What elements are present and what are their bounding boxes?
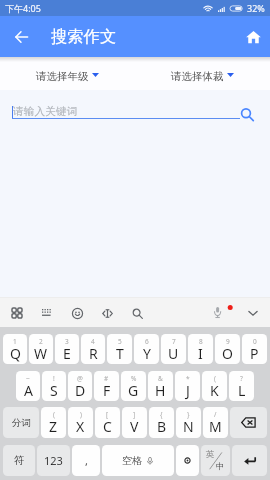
staticText: Y [143,344,151,363]
staticText: L [238,381,246,400]
button[interactable]: ( [41,407,66,438]
button[interactable]: # [94,371,119,401]
button[interactable]: Search [236,104,258,126]
staticText: I [198,344,203,363]
button[interactable]: 1 [3,334,27,364]
staticText: G [128,381,139,400]
button[interactable]: Move cursor [92,299,122,327]
staticText: 中 [216,461,225,472]
button[interactable]: 分词 [3,407,39,438]
button[interactable]: Search [122,299,152,327]
staticText: [ [106,410,109,419]
staticText: 英 [206,449,215,460]
staticText: # [104,374,109,383]
button[interactable]: 5 [107,334,132,364]
staticText: H [155,381,166,400]
button[interactable]: Enter [232,445,267,476]
button[interactable]: Period [176,445,199,476]
staticText: & [158,374,163,383]
button[interactable]: & [148,371,173,401]
staticText: C [103,417,112,436]
staticText: K [210,381,219,400]
staticText: ! [53,374,55,383]
staticText: ( [53,410,55,419]
button[interactable]: 7 [161,334,186,364]
button[interactable]: ] [122,407,147,438]
staticText: / [214,410,217,419]
button[interactable]: @ [68,371,92,401]
button[interactable]: Backspace [230,407,267,438]
button[interactable]: Keyboard layout [32,299,62,327]
button[interactable]: Switch language [201,445,230,476]
staticText: % [131,374,137,383]
button[interactable]: Apps [2,299,32,327]
staticText: 0 [253,337,257,346]
staticText: Q [10,344,21,363]
staticText: 符 [14,454,25,467]
staticText: D [75,381,86,400]
staticText: 9 [226,337,230,346]
button[interactable]: 3 [55,334,79,364]
staticText: U [168,344,179,363]
button[interactable]: ~ [16,371,40,401]
staticText: 请输入关键词 [13,105,78,118]
staticText: 分词 [12,417,31,429]
button[interactable]: , [72,445,100,476]
staticText: 空格 [122,454,142,467]
button[interactable]: Space [102,445,174,476]
button[interactable]: Emoji [62,299,92,327]
staticText: 5 [118,337,122,346]
button[interactable]: { [149,407,174,438]
staticText: 2 [39,337,43,346]
button[interactable]: ( [202,371,227,401]
staticText: ? [240,374,243,383]
staticText: O [222,344,233,363]
button[interactable]: 符 [3,445,35,476]
staticText: W [34,344,48,363]
button[interactable]: % [121,371,146,401]
button[interactable]: 6 [134,334,159,364]
staticText: { [160,410,163,419]
staticText: ~ [26,374,30,383]
staticText: 6 [145,337,149,346]
staticText: B [157,417,167,436]
staticText: ] [133,410,136,419]
button[interactable]: 请选择体裁 [135,70,270,90]
button[interactable]: ? [229,371,254,401]
button[interactable]: * [175,371,200,401]
button[interactable]: 9 [215,334,240,364]
staticText: 1 [13,337,17,346]
staticText: J [186,381,190,400]
staticText: A [24,381,33,400]
button[interactable]: 8 [188,334,213,364]
staticText: ) [80,410,82,419]
staticText: N [183,417,194,436]
button[interactable]: ) [68,407,93,438]
staticText: 32% [247,2,265,14]
staticText: * [186,374,190,383]
button[interactable]: / [203,407,228,438]
staticText: 7 [172,337,176,346]
staticText: R [89,344,98,363]
button[interactable]: ! [42,371,66,401]
staticText: } [187,410,190,419]
button[interactable]: } [176,407,201,438]
button[interactable]: Home [236,16,270,57]
button[interactable]: 123 [37,445,70,476]
staticText: 请选择年级 [36,70,89,83]
button[interactable]: Hide keyboard [238,299,268,327]
button[interactable]: 0 [242,334,267,364]
button[interactable]: 请选择年级 [0,70,135,90]
button[interactable]: [ [95,407,120,438]
staticText: 3 [65,337,69,346]
staticText: M [209,417,222,436]
staticText: F [103,381,111,400]
staticText: P [250,344,259,363]
button[interactable]: 4 [81,334,105,364]
staticText: 请选择体裁 [171,70,224,83]
staticText: X [76,417,85,436]
button[interactable]: Back [9,16,34,57]
staticText: V [130,417,139,436]
button[interactable]: Voice input [208,299,238,327]
button[interactable]: 2 [29,334,53,364]
